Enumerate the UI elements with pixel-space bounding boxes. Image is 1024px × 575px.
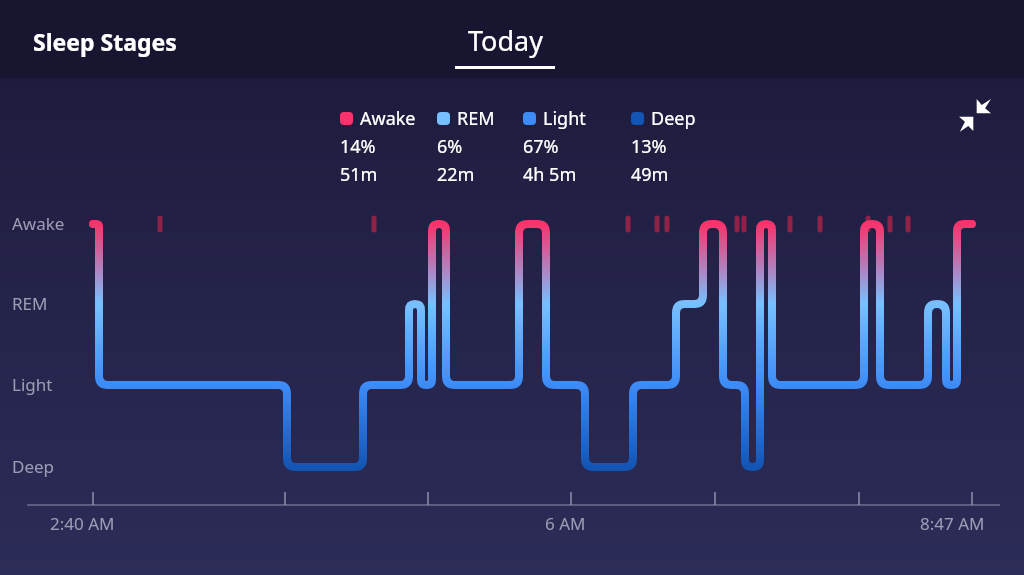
staticText: Awake bbox=[12, 212, 65, 235]
staticText: 14% bbox=[340, 134, 376, 159]
staticText: Light bbox=[543, 106, 586, 131]
staticText: Sleep Stages bbox=[33, 26, 177, 57]
staticText: 6 AM bbox=[545, 512, 586, 535]
staticText: 8:47 AM bbox=[920, 512, 985, 535]
staticText: Deep bbox=[12, 455, 55, 478]
staticText: 6% bbox=[437, 134, 463, 159]
staticText: Deep bbox=[651, 106, 696, 131]
staticText: 22m bbox=[437, 162, 475, 187]
button[interactable]: Today bbox=[455, 22, 555, 69]
staticText: REM bbox=[457, 106, 495, 131]
staticText: REM bbox=[12, 292, 48, 315]
button[interactable]: Collapse chart bbox=[954, 94, 996, 136]
staticText: Light bbox=[12, 373, 53, 396]
staticText: Today bbox=[468, 22, 543, 59]
staticText: Awake bbox=[360, 106, 416, 131]
staticText: 67% bbox=[523, 134, 559, 159]
staticText: 49m bbox=[631, 162, 669, 187]
staticText: 4h 5m bbox=[523, 162, 577, 187]
staticText: 2:40 AM bbox=[50, 512, 115, 535]
staticText: 51m bbox=[340, 162, 378, 187]
staticText: 13% bbox=[631, 134, 667, 159]
